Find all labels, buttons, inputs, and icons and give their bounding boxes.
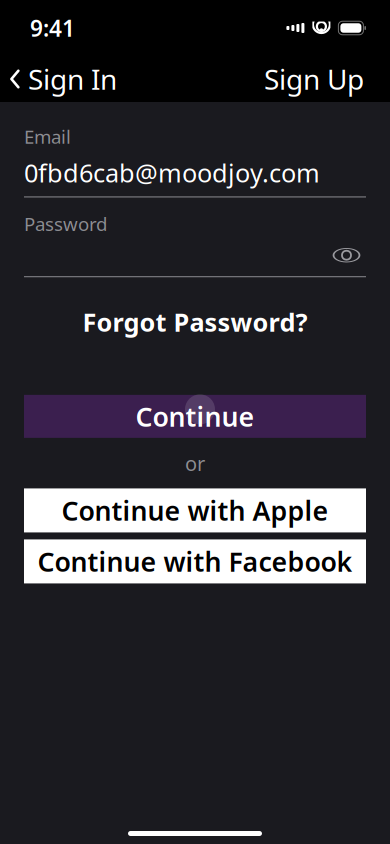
staticText: Sign In [28, 60, 117, 98]
staticText: 9:41 [30, 13, 75, 43]
staticText: or [185, 450, 205, 476]
staticText: Email [24, 124, 71, 149]
button[interactable]: Continue with Facebook [24, 539, 366, 583]
staticText: Continue with Facebook [37, 544, 352, 579]
button[interactable]: Forgot Password? [24, 295, 366, 349]
button[interactable]: Sign In [0, 50, 129, 108]
staticText: Continue [135, 399, 254, 434]
button[interactable]: Continue with Apple [24, 488, 366, 532]
button[interactable]: Continue [24, 395, 366, 438]
staticText: Forgot Password? [82, 305, 307, 339]
staticText: Continue with Apple [61, 493, 328, 528]
button[interactable]: Sign Up [246, 50, 382, 108]
button[interactable]: Show password [327, 243, 366, 267]
staticText: Password [24, 211, 107, 236]
staticText: 0fbd6cab@moodjoy.com [24, 156, 320, 189]
staticText: Sign Up [264, 60, 364, 98]
